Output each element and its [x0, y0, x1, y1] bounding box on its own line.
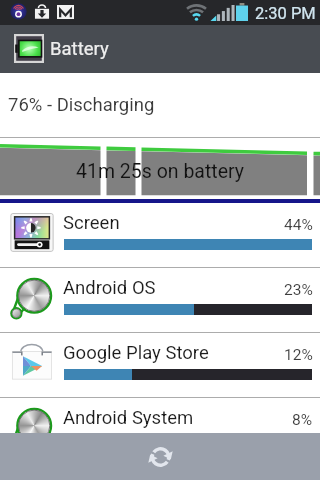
button[interactable]: Screen [0, 203, 320, 267]
staticText: Google Play Store [63, 342, 209, 364]
staticText: 41m 25s on battery [76, 160, 245, 183]
staticText: Android OS [63, 277, 156, 299]
staticText: Screen [63, 212, 120, 234]
staticText: 76% - Discharging [8, 94, 155, 116]
staticText: 23% [284, 281, 313, 299]
button[interactable]: Battery [0, 25, 320, 73]
button[interactable]: Android OS [0, 268, 320, 332]
staticText: Android System [63, 407, 194, 429]
button[interactable]: Refresh [137, 434, 183, 480]
staticText: 44% [284, 216, 313, 234]
staticText: 12% [284, 346, 313, 364]
staticText: 2:30 PM [255, 4, 316, 23]
staticText: 8% [292, 411, 313, 429]
staticText: Battery [50, 38, 109, 60]
button[interactable]: Google Play Store [0, 333, 320, 397]
button[interactable]: Android System [0, 398, 320, 462]
